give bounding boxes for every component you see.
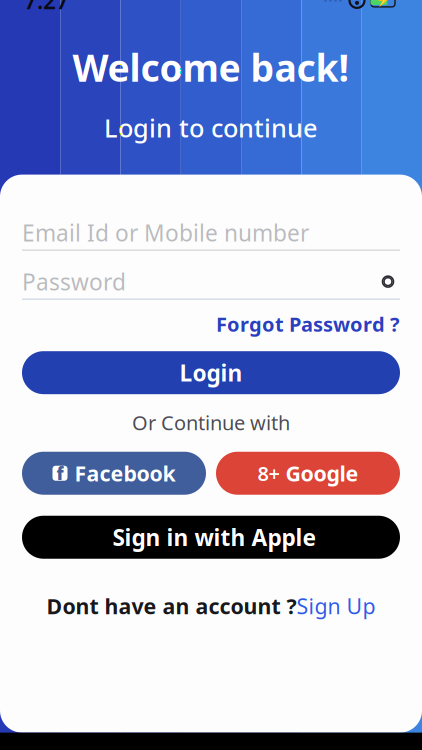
staticText: f: [56, 462, 63, 485]
staticText: Google: [285, 459, 358, 487]
button[interactable]: Forgot Password ?: [216, 311, 400, 337]
staticText: Login to continue: [104, 111, 318, 145]
staticText: ⚡: [375, 0, 390, 7]
button[interactable]: f: [22, 452, 206, 495]
staticText: Or Continue with: [132, 409, 290, 436]
button[interactable]: [22, 516, 400, 559]
staticText: Login: [179, 358, 242, 388]
button[interactable]: Login: [22, 351, 400, 394]
staticText: Email Id or Mobile number: [22, 218, 309, 248]
staticText: 8+: [257, 460, 279, 486]
staticText: Forgot Password ?: [216, 311, 400, 337]
staticText: Welcome back!: [72, 42, 349, 92]
staticText: Dont have an account ?: [46, 592, 296, 620]
staticText: Facebook: [74, 459, 175, 487]
button[interactable]: Show password: [366, 273, 400, 291]
staticText: Sign in with Apple: [112, 522, 316, 552]
button[interactable]: 8+: [216, 452, 400, 495]
staticText: 7:27: [24, 0, 69, 15]
button[interactable]: Dont have an account ?: [46, 592, 375, 620]
staticText: Sign Up: [296, 592, 375, 620]
staticText: Password: [22, 267, 126, 297]
